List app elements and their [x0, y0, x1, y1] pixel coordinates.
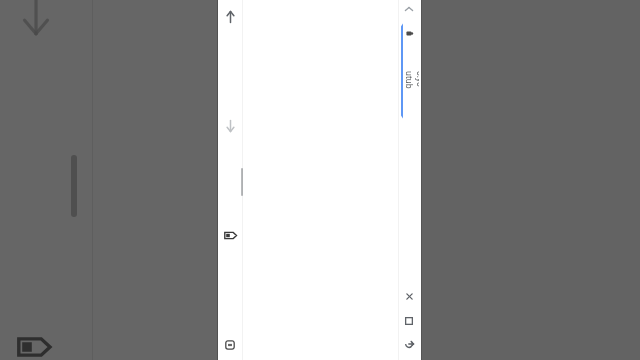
button[interactable]: studio.youtube.com — [400, 21, 419, 121]
button[interactable]: Scroll down — [218, 113, 242, 139]
button[interactable]: Bookmark — [218, 222, 242, 248]
button[interactable]: Tools — [218, 332, 242, 358]
staticText: studio.youtube.com — [400, 71, 419, 90]
button[interactable]: Close — [398, 285, 420, 307]
button[interactable]: Scroll up — [218, 4, 242, 30]
button[interactable]: Tabs — [398, 310, 420, 332]
button[interactable]: Open in app — [398, 333, 420, 355]
button[interactable]: Collapse — [398, 0, 420, 18]
